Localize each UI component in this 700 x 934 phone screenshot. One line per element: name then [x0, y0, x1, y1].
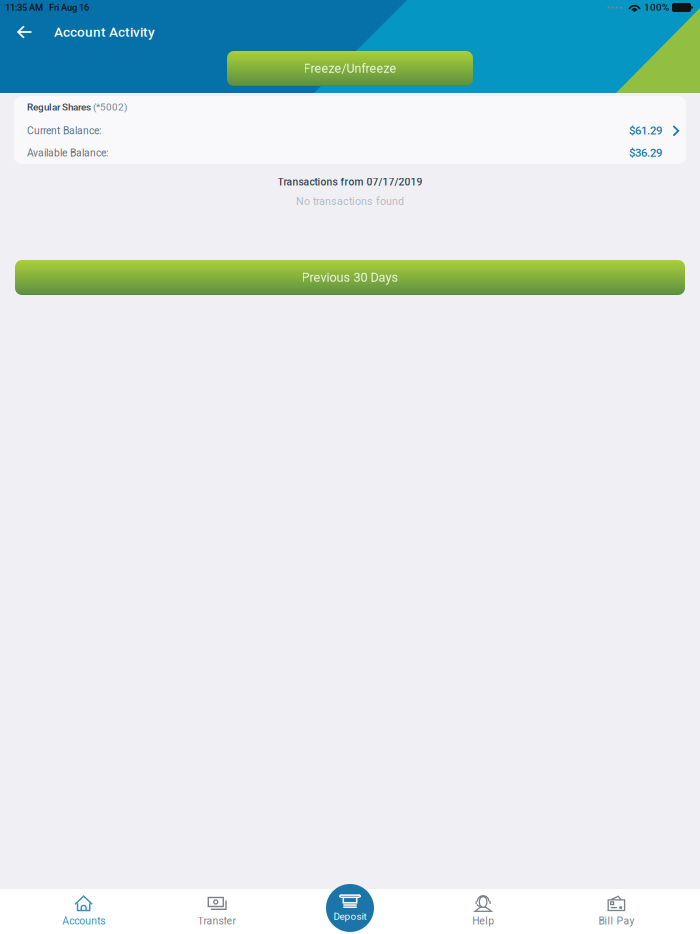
staticText: Help: [472, 915, 494, 927]
staticText: $61.29: [629, 124, 662, 137]
staticText: Regular Shares: [27, 101, 91, 113]
staticText: (*5002): [91, 101, 127, 113]
staticText: No transactions found: [296, 195, 404, 207]
staticText: Transactions from 07/17/2019: [277, 176, 422, 188]
button[interactable]: Previous 30 Days: [15, 260, 685, 295]
staticText: Deposit: [333, 911, 366, 922]
button[interactable]: Accounts: [17, 889, 150, 934]
button[interactable]: Bill Pay: [550, 889, 683, 934]
staticText: Accounts: [62, 915, 105, 927]
staticText: 100%: [644, 2, 669, 13]
staticText: 11:35 AM Fri Aug 16: [5, 2, 89, 13]
button[interactable]: Freeze/Unfreeze: [227, 51, 473, 86]
button[interactable]: Help: [416, 889, 550, 934]
staticText: Account Activity: [54, 24, 155, 40]
button[interactable]: Back: [0, 15, 54, 49]
staticText: Freeze/Unfreeze: [303, 61, 396, 76]
staticText: Transfer: [197, 915, 236, 927]
staticText: Available Balance:: [27, 147, 108, 159]
staticText: $36.29: [629, 146, 662, 160]
button[interactable]: Deposit: [325, 883, 375, 933]
staticText: Bill Pay: [598, 915, 634, 927]
button[interactable]: Regular Shares: [14, 96, 686, 164]
staticText: Current Balance:: [27, 125, 101, 137]
button[interactable]: Transfer: [150, 889, 283, 934]
staticText: Previous 30 Days: [301, 270, 398, 285]
